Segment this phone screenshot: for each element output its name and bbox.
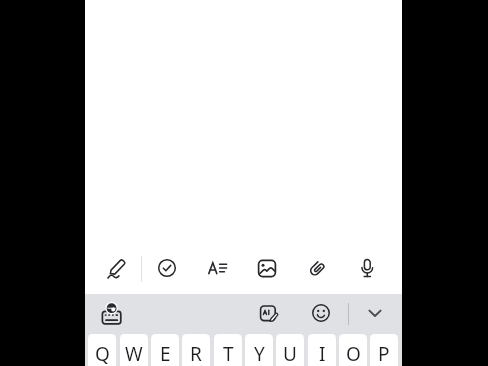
staticText: U <box>283 341 297 366</box>
button[interactable]: E <box>151 334 179 366</box>
button[interactable]: W <box>120 334 148 366</box>
button[interactable]: T <box>214 334 242 366</box>
button[interactable] <box>362 300 390 328</box>
button[interactable] <box>98 301 126 329</box>
button[interactable] <box>304 255 332 283</box>
button[interactable] <box>256 300 284 328</box>
button[interactable]: P <box>370 334 398 366</box>
button[interactable] <box>308 300 336 328</box>
button[interactable] <box>154 255 182 283</box>
button[interactable]: U <box>276 334 304 366</box>
button[interactable]: O <box>339 334 367 366</box>
staticText: Y <box>254 341 265 366</box>
staticText: R <box>190 341 202 366</box>
button[interactable] <box>354 255 382 283</box>
button[interactable]: I <box>308 334 336 366</box>
button[interactable] <box>254 255 282 283</box>
staticText: O <box>346 341 361 366</box>
staticText: W <box>125 341 143 366</box>
button[interactable] <box>104 255 132 283</box>
staticText: E <box>160 341 171 366</box>
staticText: I <box>319 341 326 366</box>
staticText: Q <box>95 341 110 366</box>
button[interactable] <box>204 255 232 283</box>
button[interactable]: Q <box>88 334 116 366</box>
button[interactable]: Y <box>245 334 273 366</box>
staticText: P <box>378 341 390 366</box>
staticText: T <box>223 341 234 366</box>
button[interactable]: R <box>182 334 210 366</box>
